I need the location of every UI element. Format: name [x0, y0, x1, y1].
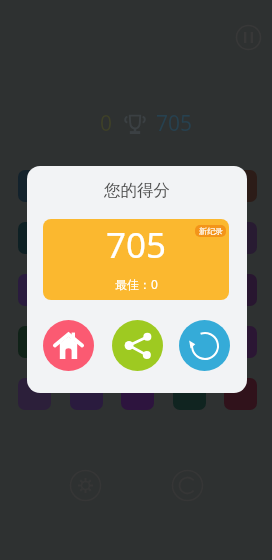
- button[interactable]: Replay: [179, 320, 230, 371]
- button[interactable]: Share: [112, 320, 163, 371]
- staticText: 您的得分: [104, 180, 170, 201]
- staticText: 0: [100, 109, 113, 138]
- staticText: 705: [156, 109, 193, 138]
- button[interactable]: Home: [43, 320, 94, 371]
- staticText: 最佳：0: [115, 276, 158, 292]
- button[interactable]: Pause: [235, 24, 262, 51]
- staticText: 705: [106, 221, 167, 269]
- staticText: 新纪录: [199, 226, 223, 236]
